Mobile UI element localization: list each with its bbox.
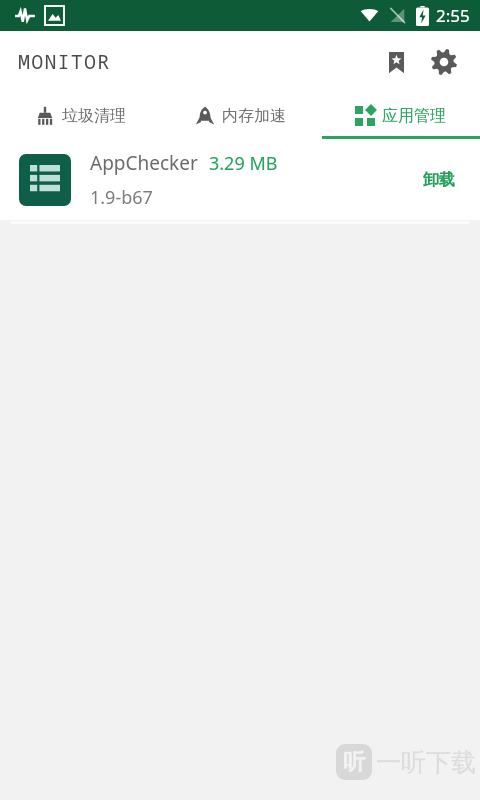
button[interactable]: AppChecker (0, 139, 480, 220)
button[interactable]: 内存加速 (160, 92, 320, 139)
staticText: 垃圾清理 (62, 106, 126, 126)
button[interactable]: Bookmarks (372, 38, 420, 86)
staticText: MONITOR (18, 48, 111, 75)
staticText: 卸载 (423, 170, 455, 190)
button[interactable]: Settings (420, 38, 468, 86)
staticText: 应用管理 (382, 106, 446, 126)
staticText: 内存加速 (222, 106, 286, 126)
button[interactable]: 垃圾清理 (0, 92, 160, 139)
button[interactable]: 卸载 (398, 139, 480, 220)
staticText: 听 (343, 748, 365, 776)
staticText: 2:55 (436, 4, 470, 27)
staticText: 一听下载 (376, 747, 476, 778)
staticText: 3.29 MB (209, 151, 278, 176)
button[interactable]: 应用管理 (320, 92, 480, 139)
staticText: 1.9-b67 (90, 185, 153, 210)
staticText: AppChecker (90, 150, 198, 176)
